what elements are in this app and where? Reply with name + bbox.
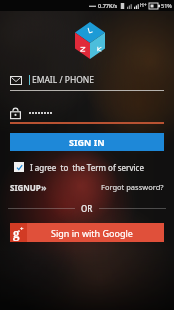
staticText: g [13,225,20,241]
button[interactable]: I agree to the Term of service [14,160,160,174]
staticText: Sign in with Google [51,227,133,239]
staticText: OR [81,203,93,214]
staticText: SIGN IN [69,136,105,148]
button[interactable] [10,104,164,122]
button[interactable]: SIGNUP [8,179,49,195]
button[interactable]: g [10,223,164,242]
staticText: 51% [161,2,172,9]
staticText: » [41,181,47,193]
staticText: H+ [140,2,147,9]
staticText: 0.77K/s [98,2,118,9]
button[interactable]: SIGN IN [10,133,164,151]
staticText: + [20,225,24,233]
staticText: Forgot password? [101,182,164,192]
button[interactable]: EMAIL / PHONE [10,70,164,90]
staticText: I agree to the Term of service [30,162,144,173]
staticText: SIGNUP [10,182,41,193]
staticText: EMAIL / PHONE [32,74,95,86]
button[interactable]: Forgot password? [99,180,166,194]
